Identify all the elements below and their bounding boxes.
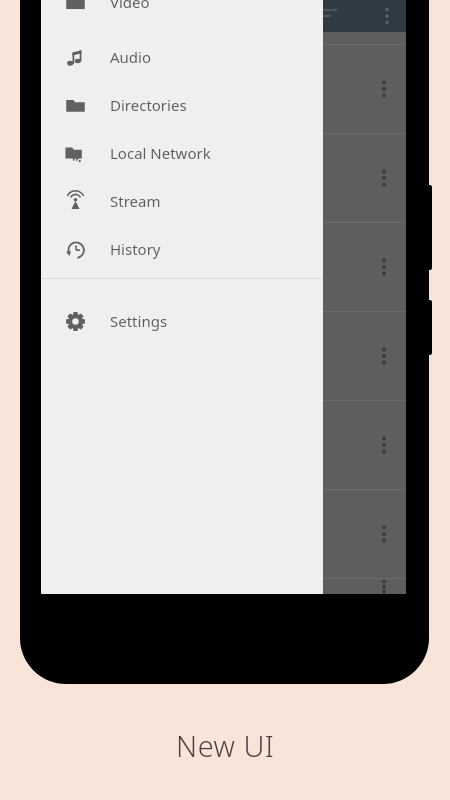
staticText: فيلم تأمل ا (177, 152, 244, 172)
button[interactable]: How Never To (41, 223, 406, 311)
staticText: Settings (110, 311, 168, 331)
button[interactable]: Video options (370, 520, 398, 548)
button[interactable]: More options (374, 3, 400, 29)
button[interactable]: Stream (41, 177, 323, 225)
button[interactable]: Video (41, 0, 323, 18)
button[interactable]: فيلم تأمل ا (41, 134, 406, 222)
button[interactable]: big_buck.mp4 (41, 401, 406, 489)
button[interactable]: Open navigation drawer (317, 5, 339, 27)
button[interactable]: Video options (370, 431, 398, 459)
staticText: Video (110, 0, 150, 12)
button[interactable]: Blender Intr... (41, 490, 406, 578)
button[interactable]: Directories (41, 81, 323, 129)
button[interactable]: Tears of Steel (41, 579, 406, 594)
staticText: Audio (110, 47, 152, 67)
staticText: Directories (110, 95, 187, 115)
button[interactable]: Local Network (41, 129, 323, 177)
staticText: 1920x1080 (177, 275, 244, 293)
button[interactable]: Video options (370, 164, 398, 192)
button[interactable]: Settings (41, 297, 323, 345)
button[interactable]: Video options (41, 45, 406, 133)
button[interactable]: Video options (370, 253, 398, 281)
button[interactable]: Video options (370, 75, 398, 103)
button[interactable]: Video options (370, 579, 398, 594)
staticText: History (110, 239, 161, 259)
button[interactable]: History (41, 225, 323, 273)
button[interactable]: sample_video.m... (41, 312, 406, 400)
staticText: New UI (176, 726, 275, 765)
button[interactable]: Audio (41, 33, 323, 81)
staticText: Local Network (110, 143, 211, 163)
staticText: Stream (110, 191, 161, 211)
button[interactable]: Video options (370, 342, 398, 370)
